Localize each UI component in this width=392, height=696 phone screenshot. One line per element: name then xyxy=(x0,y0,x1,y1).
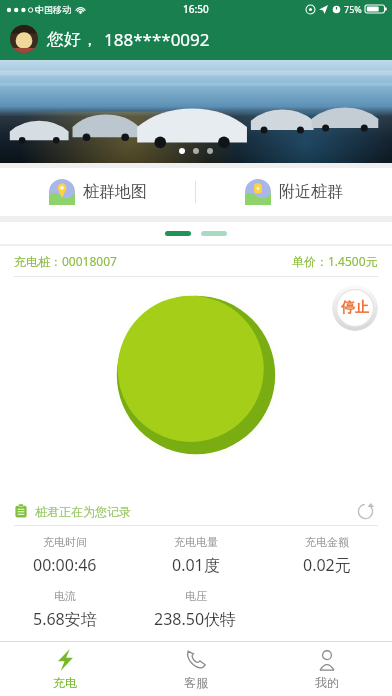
staticText: 充电时间 xyxy=(43,535,87,549)
staticText: 您好， xyxy=(47,29,98,50)
staticText: 桩群地图 xyxy=(83,182,147,202)
staticText: 附近桩群 xyxy=(279,182,343,202)
button[interactable] xyxy=(201,231,227,236)
button[interactable]: 充电 xyxy=(0,642,130,696)
staticText: 75% xyxy=(344,3,362,15)
staticText: 电流 xyxy=(54,589,76,603)
button[interactable]: 您好， xyxy=(0,18,392,60)
staticText: 电压 xyxy=(185,589,207,603)
staticText: 00:00:46 xyxy=(33,554,97,576)
button[interactable]: 附近桩群 xyxy=(196,168,392,216)
staticText: 充电 xyxy=(53,675,77,690)
staticText: 停止 xyxy=(341,299,369,317)
button[interactable] xyxy=(165,231,191,236)
button[interactable]: Refresh xyxy=(352,498,378,524)
button[interactable]: 桩群地图 xyxy=(0,168,195,216)
staticText: 客服 xyxy=(184,675,208,690)
staticText: 16:50 xyxy=(183,2,209,16)
button[interactable]: 停止 xyxy=(332,285,378,331)
staticText: 充电金额 xyxy=(305,535,349,549)
staticText: 0.02元 xyxy=(303,554,351,576)
staticText: 中国移动 xyxy=(35,4,71,15)
staticText: 5.68安培 xyxy=(33,608,97,630)
staticText: 充电桩：00018007 xyxy=(14,253,117,269)
staticText: 238.50伏特 xyxy=(154,608,237,630)
staticText: 充电电量 xyxy=(174,535,218,549)
staticText: 桩君正在为您记录 xyxy=(35,504,131,519)
staticText: 单价：1.4500元 xyxy=(292,253,378,269)
staticText: 0.01度 xyxy=(172,554,220,576)
button[interactable]: 我的 xyxy=(261,642,392,696)
staticText: 188****0092 xyxy=(104,28,210,51)
button[interactable]: 客服 xyxy=(130,642,261,696)
staticText: 我的 xyxy=(315,675,339,690)
